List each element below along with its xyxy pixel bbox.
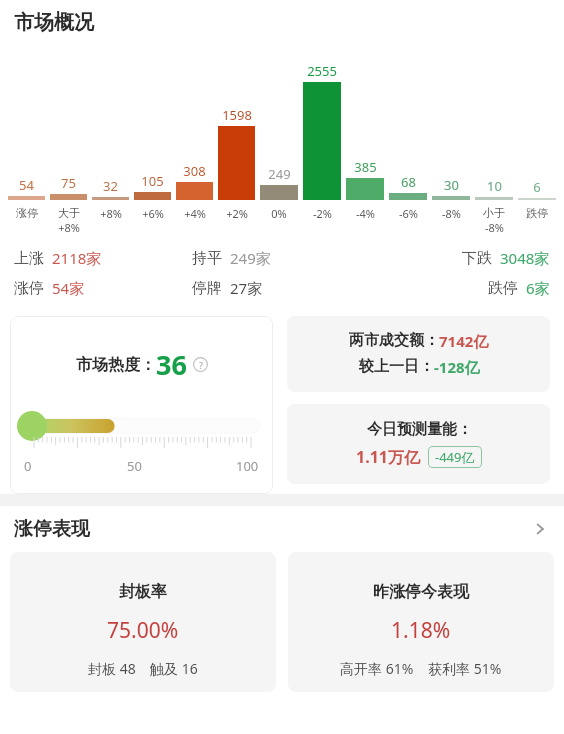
staticText: 7142亿 — [439, 331, 489, 351]
staticText: 上涨 — [14, 249, 44, 268]
staticText: 308 — [183, 162, 206, 180]
staticText: 触及 16 — [150, 659, 198, 678]
staticText: -8% — [442, 206, 461, 221]
button[interactable]: 封板率 — [10, 552, 276, 692]
staticText: 249 — [268, 165, 291, 183]
staticText: 3048家 — [500, 248, 550, 268]
staticText: 昨涨停今表现 — [373, 582, 469, 602]
staticText: 1598 — [222, 106, 252, 124]
staticText: -8% — [485, 220, 504, 235]
staticText: 105 — [141, 172, 164, 190]
staticText: 6家 — [526, 278, 550, 298]
staticText: 持平 — [192, 249, 222, 268]
button[interactable]: 昨涨停今表现 — [288, 552, 554, 692]
staticText: -2% — [313, 206, 332, 221]
staticText: 0 — [24, 457, 32, 475]
button[interactable]: 今日预测量能： — [287, 404, 550, 484]
staticText: 市场热度： — [76, 355, 156, 375]
other: More — [530, 519, 550, 539]
staticText: ? — [199, 359, 203, 371]
staticText: 54家 — [52, 278, 85, 298]
staticText: 30 — [444, 176, 459, 194]
staticText: 获利率 51% — [428, 659, 502, 678]
staticText: 涨停表现 — [14, 517, 90, 541]
staticText: 两市成交额： — [349, 331, 439, 350]
staticText: 下跌 — [462, 249, 492, 268]
staticText: 今日预测量能： — [367, 420, 472, 439]
staticText: -449亿 — [435, 448, 475, 466]
staticText: 跌停 — [488, 279, 518, 298]
staticText: 32 — [103, 177, 118, 195]
staticText: 1.11万亿 — [356, 446, 420, 468]
button[interactable]: 市场热度： — [10, 316, 273, 494]
staticText: 27家 — [230, 278, 263, 298]
staticText: -128亿 — [434, 357, 480, 377]
staticText: 较上一日： — [359, 357, 434, 376]
staticText: 小于 — [483, 206, 505, 220]
staticText: 封板 48 — [88, 659, 136, 678]
staticText: 249家 — [230, 248, 271, 268]
staticText: -4% — [356, 206, 375, 221]
staticText: 跌停 — [526, 206, 548, 220]
staticText: 54 — [19, 176, 34, 194]
staticText: 385 — [354, 158, 377, 176]
staticText: 50 — [127, 457, 142, 475]
staticText: +6% — [142, 206, 164, 221]
staticText: 大于 — [58, 206, 80, 220]
staticText: 68 — [401, 173, 416, 191]
staticText: 市场概况 — [14, 10, 94, 35]
staticText: 6 — [533, 178, 541, 196]
staticText: 涨停 — [14, 279, 44, 298]
staticText: 36 — [156, 346, 187, 383]
button[interactable]: 涨停表现 — [0, 506, 564, 552]
button[interactable]: Help — [193, 357, 208, 372]
staticText: 75.00% — [107, 616, 179, 645]
button[interactable]: 两市成交额： — [287, 316, 550, 392]
staticText: 高开率 61% — [340, 659, 414, 678]
staticText: 涨停 — [16, 206, 38, 220]
staticText: 停牌 — [192, 279, 222, 298]
staticText: 封板率 — [119, 582, 167, 602]
staticText: 10 — [487, 177, 502, 195]
staticText: +4% — [184, 206, 206, 221]
staticText: 2555 — [307, 62, 337, 80]
staticText: +8% — [100, 206, 122, 221]
staticText: -6% — [399, 206, 418, 221]
staticText: 100 — [236, 457, 259, 475]
staticText: 2118家 — [52, 248, 102, 268]
staticText: 0% — [271, 206, 287, 221]
staticText: 1.18% — [391, 616, 451, 645]
staticText: +8% — [58, 220, 80, 235]
staticText: +2% — [226, 206, 248, 221]
staticText: 75 — [61, 174, 76, 192]
